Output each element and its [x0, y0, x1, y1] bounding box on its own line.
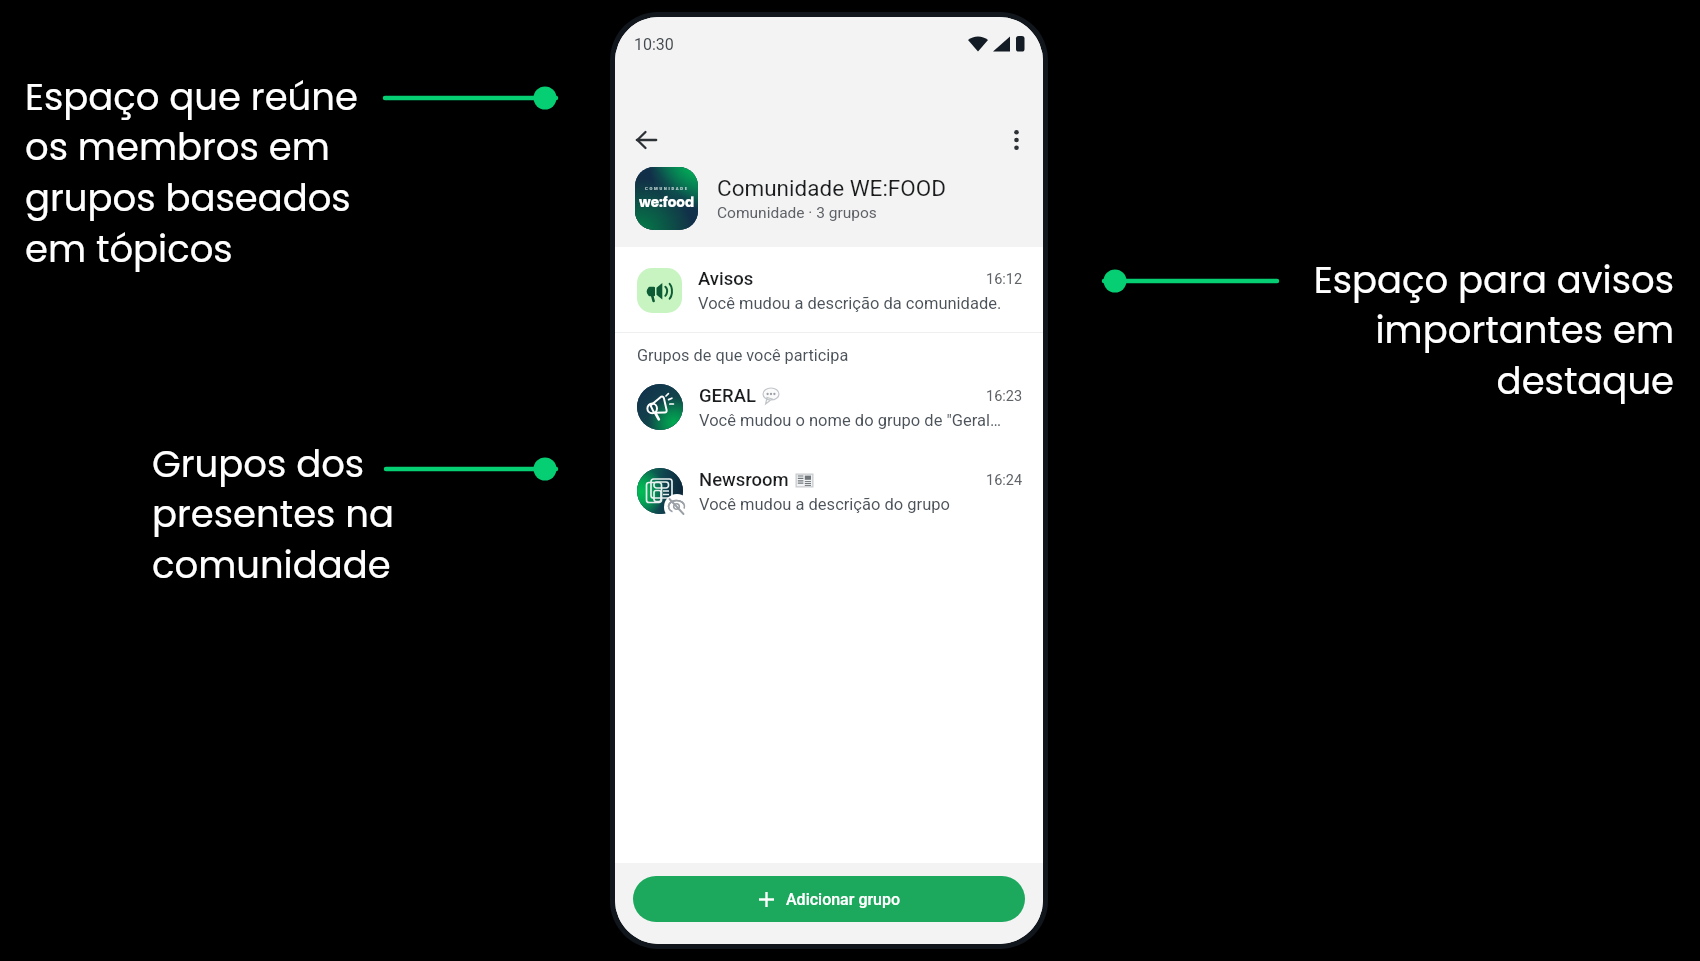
button[interactable]: Avisos: [615, 247, 1043, 332]
staticText: Espaço que reúne os membros em grupos ba…: [25, 71, 358, 275]
staticText: 16:23: [986, 388, 1023, 405]
staticText: 16:24: [986, 472, 1023, 489]
staticText: Espaço para avisos importantes em destaq…: [1292, 254, 1674, 407]
staticText: Newsroom: [699, 469, 789, 491]
button[interactable]: Adicionar grupo: [633, 876, 1025, 922]
staticText: Avisos: [698, 268, 754, 290]
button[interactable]: Mais opções: [998, 122, 1034, 158]
button[interactable]: Newsroom: [615, 468, 1043, 514]
button[interactable]: GERAL: [615, 384, 1043, 430]
staticText: Grupos de que você participa: [637, 346, 849, 365]
staticText: Comunidade · 3 grupos: [717, 204, 877, 222]
staticText: Você mudou o nome do grupo de "Geral…: [699, 411, 1002, 430]
staticText: GERAL: [699, 385, 756, 407]
staticText: we:food: [639, 193, 695, 212]
staticText: 10:30: [634, 35, 674, 54]
staticText: Grupos dos presentes na comunidade: [152, 438, 394, 591]
staticText: COMUNIDADE: [645, 186, 689, 191]
staticText: Você mudou a descrição da comunidade.: [698, 294, 1002, 313]
staticText: Você mudou a descrição do grupo: [699, 495, 950, 514]
button[interactable]: COMUNIDADE: [615, 167, 1043, 230]
staticText: Comunidade WE:FOOD: [717, 175, 946, 201]
staticText: Adicionar grupo: [786, 890, 901, 909]
button[interactable]: Voltar: [628, 122, 664, 158]
staticText: 16:12: [986, 271, 1023, 288]
